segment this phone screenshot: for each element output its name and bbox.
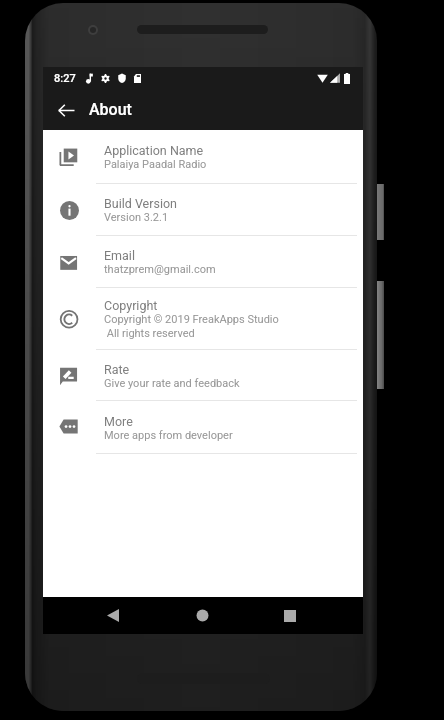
button[interactable]: Copyright [43,288,363,350]
staticText: More [104,414,133,429]
button[interactable]: Build Version [43,184,363,236]
staticText: Application Name [104,143,204,158]
button[interactable]: Back [90,597,136,634]
button[interactable]: Application Name [43,130,363,184]
staticText: Palaiya Paadal Radio [104,158,207,171]
button[interactable]: Back [50,94,82,126]
staticText: More apps from developer [104,429,233,442]
staticText: Rate [104,362,130,377]
staticText: Build Version [104,196,177,211]
button[interactable]: Email [43,236,363,288]
staticText: Copyright © 2019 FreakApps Studio All ri… [104,313,279,340]
staticText: Email [104,248,135,263]
button[interactable]: More [43,401,363,454]
staticText: Version 3.2.1 [104,211,169,224]
staticText: Give your rate and feedback [104,377,240,390]
staticText: About [89,100,132,119]
staticText: Copyright [104,298,158,313]
button[interactable]: Recent apps [267,597,313,634]
staticText: 8:27 [54,72,76,85]
staticText: thatzprem@gmail.com [104,263,216,276]
button[interactable]: Home [179,597,225,634]
button[interactable]: Rate [43,350,363,401]
